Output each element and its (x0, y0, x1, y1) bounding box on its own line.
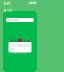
staticText: Title text here (9, 39, 30, 43)
staticText: more info (13, 52, 27, 55)
staticText: Back (7, 9, 12, 12)
staticText: Search (11, 18, 19, 22)
staticText: 9:41 (3, 1, 10, 6)
button[interactable]: Search (6, 18, 34, 22)
staticText: Secondary detail line (9, 44, 31, 51)
button[interactable]: Back (3, 7, 13, 13)
